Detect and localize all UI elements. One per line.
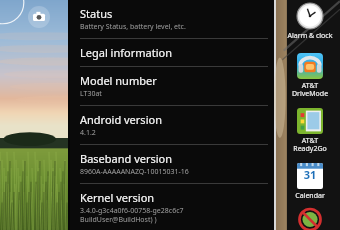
button[interactable]: Kernel version — [70, 184, 274, 230]
staticText: Baseband version — [80, 151, 173, 166]
button[interactable]: Status — [70, 0, 274, 38]
staticText: Kernel version — [80, 190, 155, 205]
staticText: 4.1.2 — [80, 128, 96, 138]
button[interactable]: Model number — [70, 67, 274, 105]
staticText: AT&T Ready2Go — [284, 136, 336, 153]
button[interactable]: 31 — [284, 161, 336, 203]
staticText: Alarm & clock — [284, 31, 336, 41]
staticText: Legal information — [80, 45, 172, 60]
staticText: Calendar — [284, 191, 336, 201]
button[interactable]: Alarm & clock — [284, 1, 336, 43]
staticText: 8960A-AAAAANAZQ-10015031-16 — [80, 167, 189, 177]
staticText: Battery Status, battery level, etc. — [80, 22, 186, 32]
button[interactable]: Legal information — [70, 39, 274, 66]
button[interactable]: Android version — [70, 106, 274, 144]
staticText: Model number — [80, 73, 157, 88]
button[interactable]: Baseband version — [70, 145, 274, 183]
button[interactable]: AT&T Ready2Go — [284, 106, 336, 155]
staticText: LT30at — [80, 89, 102, 99]
staticText: 3.4.0-g3c4a0f6-00758-ge28c6c7 BuildUser@… — [80, 206, 226, 224]
button[interactable]: Camera — [28, 6, 50, 28]
button[interactable]: AT&T DriveMode — [284, 51, 336, 100]
staticText: Android version — [80, 112, 162, 127]
staticText: AT&T DriveMode — [284, 81, 336, 98]
staticText: Status — [80, 6, 113, 21]
staticText: 31 — [297, 167, 323, 189]
